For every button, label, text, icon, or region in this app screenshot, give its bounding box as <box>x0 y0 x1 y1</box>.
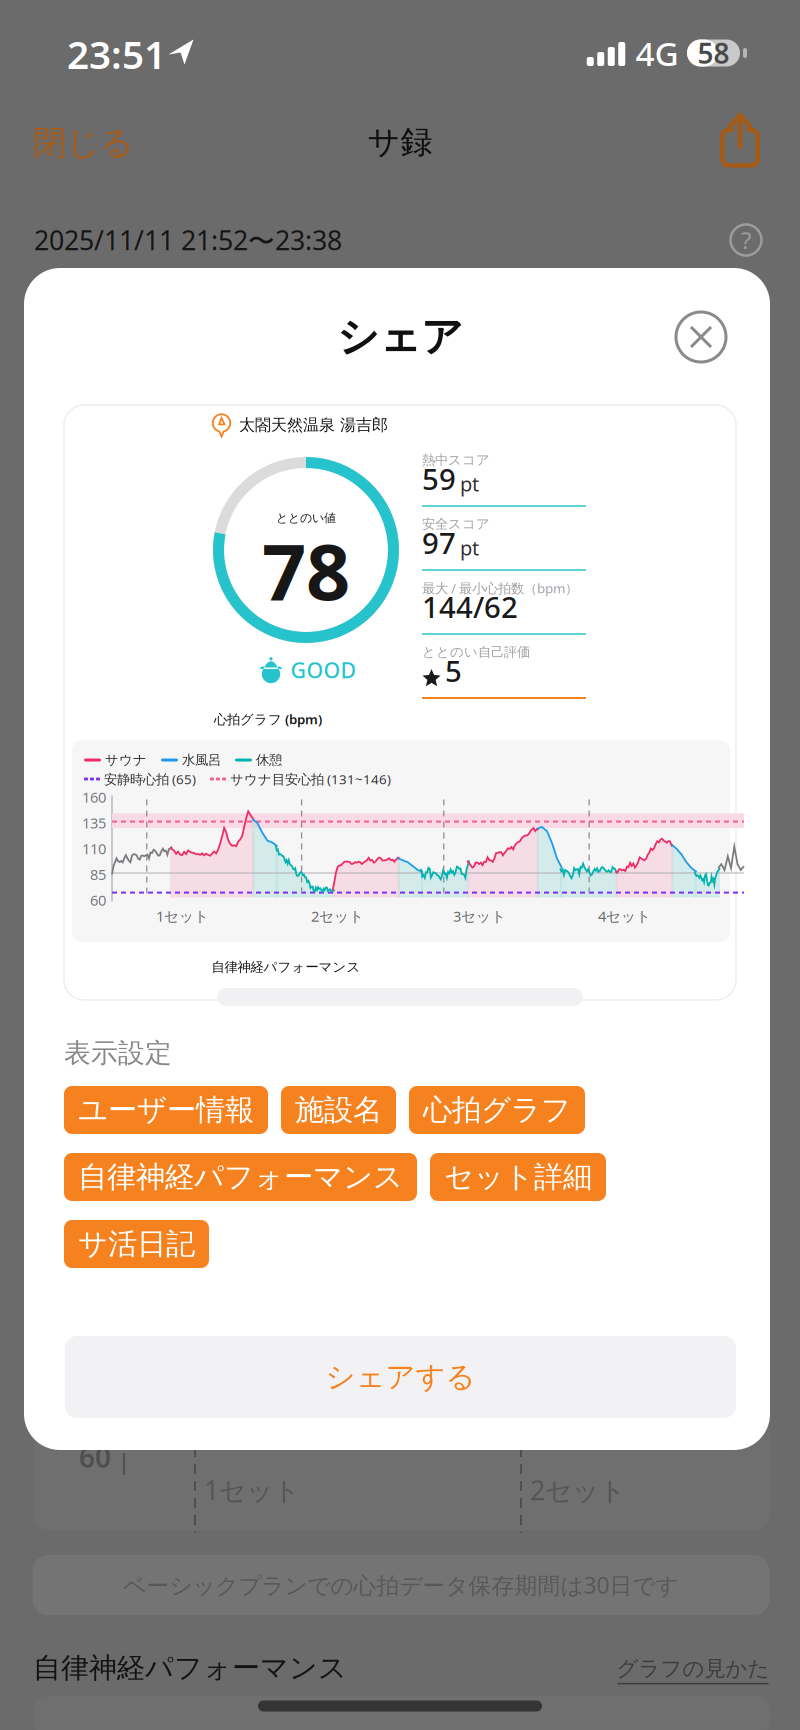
staticText: サ活日記 <box>78 1226 195 1262</box>
staticText: 5 <box>445 651 462 690</box>
staticText: 表示設定 <box>64 1037 172 1069</box>
button[interactable]: 施設名 <box>281 1086 396 1134</box>
staticText: ととのい自己評価 <box>422 644 530 660</box>
staticText: 安静時心拍 (65) <box>104 770 196 788</box>
staticText: 23:51 <box>67 28 166 80</box>
staticText: 熱中スコア <box>422 452 490 468</box>
staticText: 97 <box>422 523 456 562</box>
staticText: 休憩 <box>256 752 282 768</box>
staticText: ? <box>741 224 751 256</box>
staticText: 心拍グラフ <box>423 1092 571 1128</box>
staticText: 最大 / 最小心拍数（bpm） <box>422 579 578 597</box>
button[interactable]: サ活日記 <box>64 1220 209 1268</box>
staticText: pt <box>460 534 479 561</box>
staticText: サウナ目安心拍 (131~146) <box>230 770 391 788</box>
staticText: 1セット <box>204 1472 300 1508</box>
button[interactable]: 心拍グラフ <box>409 1086 585 1134</box>
staticText: 1セット <box>156 906 209 926</box>
staticText: サ録 <box>367 122 432 162</box>
button[interactable]: Help <box>730 224 761 255</box>
button[interactable]: Share <box>720 113 760 166</box>
button[interactable]: Close <box>676 312 726 362</box>
staticText: 施設名 <box>295 1092 382 1128</box>
staticText: 3セット <box>453 906 506 926</box>
staticText: 160 <box>82 787 106 807</box>
staticText: 心拍グラフ (bpm) <box>214 710 322 728</box>
staticText: ユーザー情報 <box>78 1092 254 1128</box>
button[interactable]: グラフの見かた <box>616 1656 769 1684</box>
staticText: 78 <box>262 519 350 621</box>
staticText: 144/62 <box>422 587 518 626</box>
staticText: 自律神経パフォーマンス <box>211 959 360 975</box>
staticText: 60 <box>90 890 106 910</box>
staticText: 4G <box>635 31 678 75</box>
staticText: シェアする <box>325 1359 475 1395</box>
staticText: ベーシックプランでの心拍データ保存期間は30日です <box>123 1570 678 1600</box>
staticText: 58 <box>697 34 729 72</box>
staticText: 110 <box>82 839 106 858</box>
staticText: 2025/11/11 21:52〜23:38 <box>34 222 342 258</box>
staticText: シェア <box>337 312 463 362</box>
staticText: 自律神経パフォーマンス <box>78 1159 403 1195</box>
staticText: pt <box>460 470 479 497</box>
staticText: 閉じる <box>33 122 134 163</box>
staticText: サウナ <box>105 752 147 768</box>
staticText: 59 <box>422 459 456 498</box>
staticText: 4セット <box>598 906 651 926</box>
button[interactable]: 自律神経パフォーマンス <box>64 1153 417 1201</box>
staticText: 60 <box>79 1438 111 1476</box>
staticText: 水風呂 <box>182 752 221 768</box>
staticText: セット詳細 <box>444 1159 592 1195</box>
staticText: 自律神経パフォーマンス <box>33 1651 347 1685</box>
staticText: 85 <box>90 864 106 884</box>
staticText: ととのい値 <box>276 511 336 525</box>
staticText: 太閤天然温泉 湯吉郎 <box>239 415 388 435</box>
button[interactable]: セット詳細 <box>430 1153 606 1201</box>
button[interactable]: シェアする <box>65 1336 736 1418</box>
staticText: 2セット <box>311 906 364 926</box>
staticText: 2セット <box>530 1472 626 1508</box>
button[interactable]: 閉じる <box>33 121 143 165</box>
staticText: 安全スコア <box>422 516 490 532</box>
button[interactable]: ユーザー情報 <box>64 1086 268 1134</box>
staticText: 135 <box>82 813 106 832</box>
staticText: GOOD <box>290 656 356 684</box>
staticText: グラフの見かた <box>616 1656 769 1682</box>
